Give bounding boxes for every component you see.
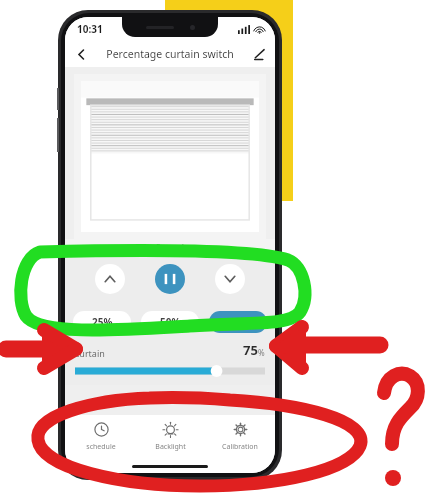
button[interactable]: Open curtain: [95, 264, 125, 294]
staticText: Calibration: [222, 442, 258, 452]
staticText: schedule: [86, 442, 116, 452]
button[interactable]: Back: [69, 42, 93, 66]
button[interactable]: Edit: [248, 43, 270, 65]
button[interactable]: Calibration: [206, 415, 274, 459]
staticText: 75: [243, 341, 258, 359]
staticText: 10:31: [77, 22, 103, 36]
staticText: Paused: [156, 242, 184, 253]
staticText: Percentage curtain switch: [106, 47, 234, 61]
button[interactable]: 25%: [73, 311, 131, 333]
staticText: 50%: [160, 315, 181, 329]
button[interactable]: Curtain position slider: [75, 364, 265, 378]
staticText: 75%: [228, 315, 249, 329]
button[interactable]: Pause: [155, 264, 185, 294]
staticText: 25%: [92, 315, 113, 329]
staticText: Backlight: [155, 442, 186, 452]
staticText: %: [258, 347, 265, 358]
button[interactable]: Backlight: [136, 415, 204, 459]
button[interactable]: 50%: [141, 311, 199, 333]
button[interactable]: 75%: [209, 311, 267, 333]
staticText: curtain: [75, 347, 105, 359]
button[interactable]: Close curtain: [215, 264, 245, 294]
button[interactable]: schedule: [67, 415, 135, 459]
